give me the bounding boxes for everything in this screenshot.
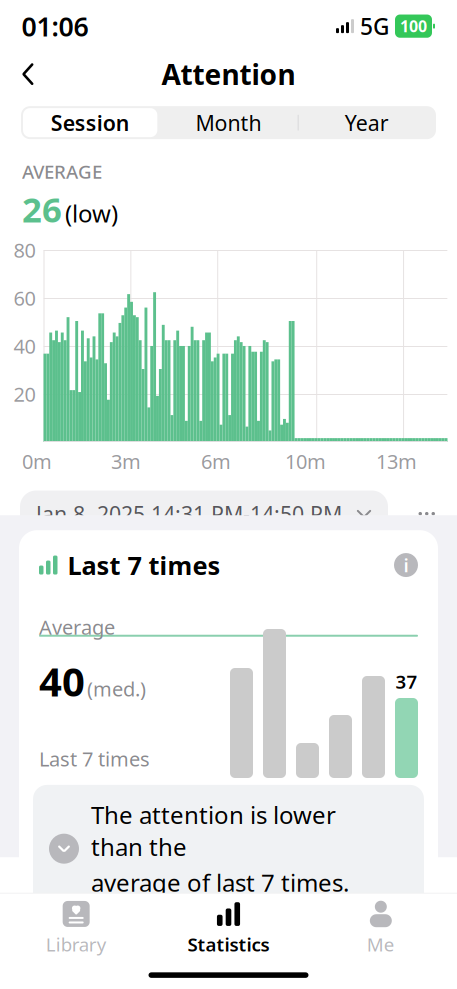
staticText: 20 <box>13 381 35 407</box>
staticText: 26 <box>22 186 62 232</box>
staticText: 40 <box>39 654 85 707</box>
button[interactable]: Library <box>0 892 152 957</box>
staticText: (med.) <box>87 675 146 702</box>
button[interactable]: Year <box>298 106 436 139</box>
staticText: 100 <box>400 15 427 37</box>
staticText: Attention <box>161 56 295 93</box>
staticText: average of last 7 times. <box>91 867 349 898</box>
staticText: Last 7 times <box>39 745 150 772</box>
staticText: AVERAGE <box>22 159 102 184</box>
staticText: Last 7 times <box>67 548 220 582</box>
staticText: 13m <box>376 448 417 475</box>
staticText: Library <box>46 932 107 957</box>
staticText: 10m <box>285 448 326 475</box>
staticText: 60 <box>13 285 35 311</box>
staticText: The attention is lower than the <box>91 799 336 863</box>
staticText: (low) <box>65 197 118 229</box>
staticText: 0m <box>22 448 52 475</box>
button[interactable]: Me <box>305 892 457 957</box>
staticText: Statistics <box>187 932 269 957</box>
staticText: 01:06 <box>21 8 88 44</box>
button[interactable]: More options <box>404 498 449 529</box>
button[interactable]: Back <box>0 55 38 93</box>
staticText: 40 <box>13 333 35 359</box>
button[interactable]: Session <box>21 106 159 139</box>
button[interactable]: Month <box>159 106 298 139</box>
button[interactable]: Jan 8, 2025 14:31 PM-14:50 PM <box>20 490 388 537</box>
button[interactable]: The attention is lower than the <box>33 785 424 912</box>
staticText: Me <box>367 932 395 957</box>
staticText: Year <box>345 108 389 137</box>
staticText: 37 <box>395 669 417 694</box>
staticText: 3m <box>111 448 141 475</box>
staticText: Session <box>51 108 130 137</box>
staticText: Jan 8, 2025 14:31 PM-14:50 PM <box>36 499 342 528</box>
button[interactable]: Information about last 7 times <box>394 553 418 577</box>
staticText: i <box>403 553 408 577</box>
staticText: 5G <box>360 11 389 41</box>
staticText: Average <box>39 614 115 640</box>
staticText: 80 <box>13 237 35 263</box>
staticText: 6m <box>201 448 231 475</box>
button[interactable]: Statistics <box>152 892 305 957</box>
staticText: Month <box>195 108 261 137</box>
